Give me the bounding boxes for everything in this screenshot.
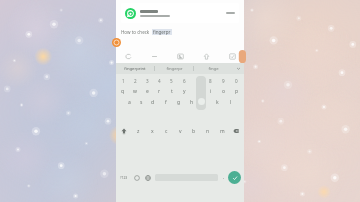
button[interactable]: d	[147, 97, 159, 108]
button[interactable]: k	[211, 97, 224, 108]
staticText: f	[165, 99, 167, 106]
staticText: 6	[183, 78, 186, 84]
staticText: 0	[235, 78, 238, 84]
button[interactable]	[121, 3, 239, 23]
staticText: fingerpr	[153, 29, 171, 35]
staticText: q	[121, 88, 125, 95]
button[interactable]: Change language	[142, 154, 153, 201]
button[interactable]: c	[159, 126, 173, 137]
button[interactable]: t	[165, 86, 178, 97]
button[interactable]: Expand suggestions	[232, 63, 244, 74]
button[interactable]: z	[131, 126, 145, 137]
staticText: w	[133, 88, 137, 95]
staticText: s	[140, 99, 143, 106]
staticText: z	[137, 128, 140, 135]
button[interactable]: g	[172, 97, 185, 108]
staticText: finge	[208, 66, 219, 72]
button[interactable]: Emoji	[131, 154, 142, 201]
button[interactable]: Backspace	[229, 108, 243, 154]
staticText: x	[151, 128, 154, 135]
staticText: p	[235, 88, 239, 95]
button[interactable]: fingerpr	[155, 63, 193, 74]
button[interactable]: fingerprint	[116, 63, 154, 74]
button[interactable]: n	[201, 126, 215, 137]
button[interactable]: Undo	[122, 50, 134, 62]
button[interactable]: p	[230, 86, 243, 97]
button[interactable]: m	[215, 126, 229, 137]
button[interactable]: o	[217, 86, 230, 97]
staticText: a	[128, 99, 131, 106]
staticText: g	[177, 99, 181, 106]
button[interactable]: Insert image	[174, 50, 186, 62]
button[interactable]: b	[187, 126, 201, 137]
staticText: r	[158, 88, 161, 95]
staticText: .	[223, 174, 225, 181]
button[interactable]: Send	[228, 171, 241, 184]
button[interactable]: 8	[204, 75, 217, 86]
button[interactable]: 1	[117, 75, 129, 86]
staticText: ?123	[120, 175, 128, 180]
button[interactable]: i	[204, 86, 217, 97]
staticText: 4	[158, 78, 161, 84]
button[interactable]: 9	[217, 75, 230, 86]
staticText: l	[230, 99, 232, 106]
staticText: j	[204, 99, 206, 106]
staticText: 5	[170, 78, 173, 84]
staticText: 8	[209, 78, 212, 84]
button[interactable]: Assistant	[112, 38, 121, 47]
button[interactable]: Redo	[148, 50, 160, 62]
button[interactable]: q	[117, 86, 129, 97]
staticText: 9	[222, 78, 225, 84]
staticText: 2	[134, 78, 137, 84]
staticText: How to check	[121, 29, 150, 35]
button[interactable]: 3	[141, 75, 153, 86]
staticText: fingerprint	[124, 66, 146, 72]
button[interactable]: Share	[200, 50, 212, 62]
staticText: e	[146, 88, 149, 95]
staticText: v	[179, 128, 182, 135]
button[interactable]: a	[123, 97, 135, 108]
button[interactable]: Insert note	[226, 50, 238, 62]
button[interactable]: x	[145, 126, 159, 137]
button[interactable]: s	[135, 97, 147, 108]
button[interactable]: e	[141, 86, 153, 97]
button[interactable]: Shift	[117, 108, 131, 154]
button[interactable]: j	[198, 97, 211, 108]
button[interactable]: 6	[178, 75, 191, 86]
button[interactable]: 5	[165, 75, 178, 86]
staticText: t	[171, 88, 173, 95]
button[interactable]: 7	[191, 75, 204, 86]
button[interactable]: r	[153, 86, 165, 97]
staticText: c	[165, 128, 168, 135]
staticText: k	[216, 99, 219, 106]
staticText: 3	[146, 78, 149, 84]
staticText: h	[190, 99, 194, 106]
button[interactable]: 2	[129, 75, 141, 86]
button[interactable]: w	[129, 86, 141, 97]
button[interactable]: 0	[230, 75, 243, 86]
staticText: 1	[122, 78, 125, 84]
button[interactable]: v	[173, 126, 187, 137]
staticText: n	[206, 128, 210, 135]
button[interactable]: u	[191, 86, 204, 97]
staticText: fingerpr	[166, 66, 183, 72]
staticText: o	[222, 88, 226, 95]
button[interactable]: y	[178, 86, 191, 97]
button[interactable]: h	[185, 97, 198, 108]
button[interactable]: l	[224, 97, 237, 108]
button[interactable]: f	[159, 97, 172, 108]
button[interactable]: ?123	[117, 154, 131, 201]
button[interactable]: 4	[153, 75, 165, 86]
staticText: y	[183, 88, 186, 95]
staticText: d	[151, 99, 155, 106]
staticText: i	[210, 88, 212, 95]
button[interactable]: finge	[194, 63, 232, 74]
staticText: m	[220, 128, 225, 135]
staticText: b	[192, 128, 196, 135]
